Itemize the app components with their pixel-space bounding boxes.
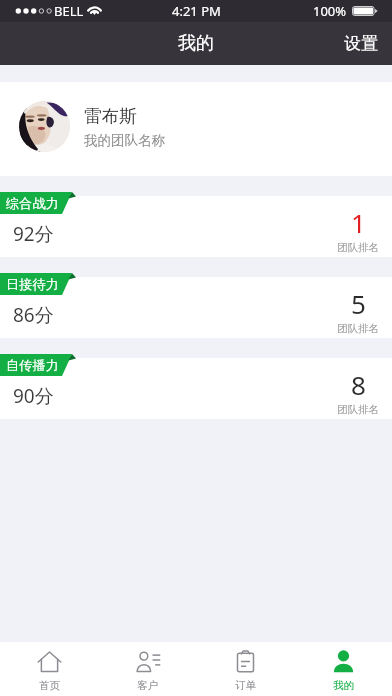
button[interactable]: 设置: [330, 23, 392, 64]
staticText: 4:21 PM: [172, 2, 221, 20]
button[interactable]: 雷布斯: [0, 82, 392, 176]
staticText: 100%: [313, 2, 347, 20]
button[interactable]: 自传播力: [0, 358, 392, 419]
staticText: BELL: [54, 2, 84, 20]
staticText: 团队排名: [337, 403, 379, 416]
staticText: 客户: [137, 679, 158, 692]
staticText: 86分: [13, 302, 54, 328]
button[interactable]: 客户: [98, 642, 196, 696]
staticText: 1: [351, 205, 366, 240]
button[interactable]: 订单: [196, 642, 294, 696]
staticText: 日接待力: [6, 276, 59, 293]
staticText: 我的: [178, 32, 214, 55]
button[interactable]: 综合战力: [0, 196, 392, 257]
staticText: 8: [351, 367, 366, 402]
staticText: 90分: [13, 383, 54, 409]
staticText: 我的团队名称: [84, 132, 165, 149]
staticText: 团队排名: [337, 241, 379, 254]
staticText: 团队排名: [337, 322, 379, 335]
button[interactable]: 我的: [294, 642, 392, 696]
staticText: 雷布斯: [84, 105, 137, 127]
staticText: 自传播力: [6, 357, 59, 374]
staticText: 我的: [333, 679, 354, 692]
button[interactable]: 首页: [0, 642, 98, 696]
staticText: 设置: [344, 33, 378, 54]
staticText: 5: [351, 286, 366, 321]
staticText: 综合战力: [6, 195, 59, 212]
staticText: 92分: [13, 221, 54, 247]
staticText: 订单: [235, 679, 256, 692]
staticText: 首页: [39, 679, 60, 692]
button[interactable]: 日接待力: [0, 277, 392, 338]
